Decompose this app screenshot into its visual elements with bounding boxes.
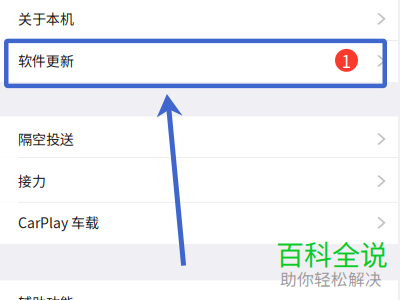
staticText: 软件更新 <box>18 50 74 70</box>
button[interactable]: 软件更新 <box>0 41 398 82</box>
button[interactable]: CarPlay 车载 <box>0 203 398 244</box>
button[interactable]: 接力 <box>0 158 398 202</box>
button[interactable]: 隔空投送 <box>0 116 398 157</box>
staticText: 隔空投送 <box>18 128 74 149</box>
staticText: CarPlay 车载 <box>18 212 99 232</box>
staticText: 接力 <box>18 170 46 191</box>
staticText: 辅助功能 <box>18 292 74 300</box>
button[interactable]: 关于本机 <box>0 0 398 40</box>
staticText: 1 <box>341 48 351 73</box>
button[interactable]: 辅助功能 <box>0 280 398 300</box>
button[interactable]: 软件更新 highlight <box>6 41 385 86</box>
staticText: 百科全说 <box>276 233 388 273</box>
staticText: 关于本机 <box>18 8 74 28</box>
staticText: 助你轻松解决 <box>280 266 382 290</box>
